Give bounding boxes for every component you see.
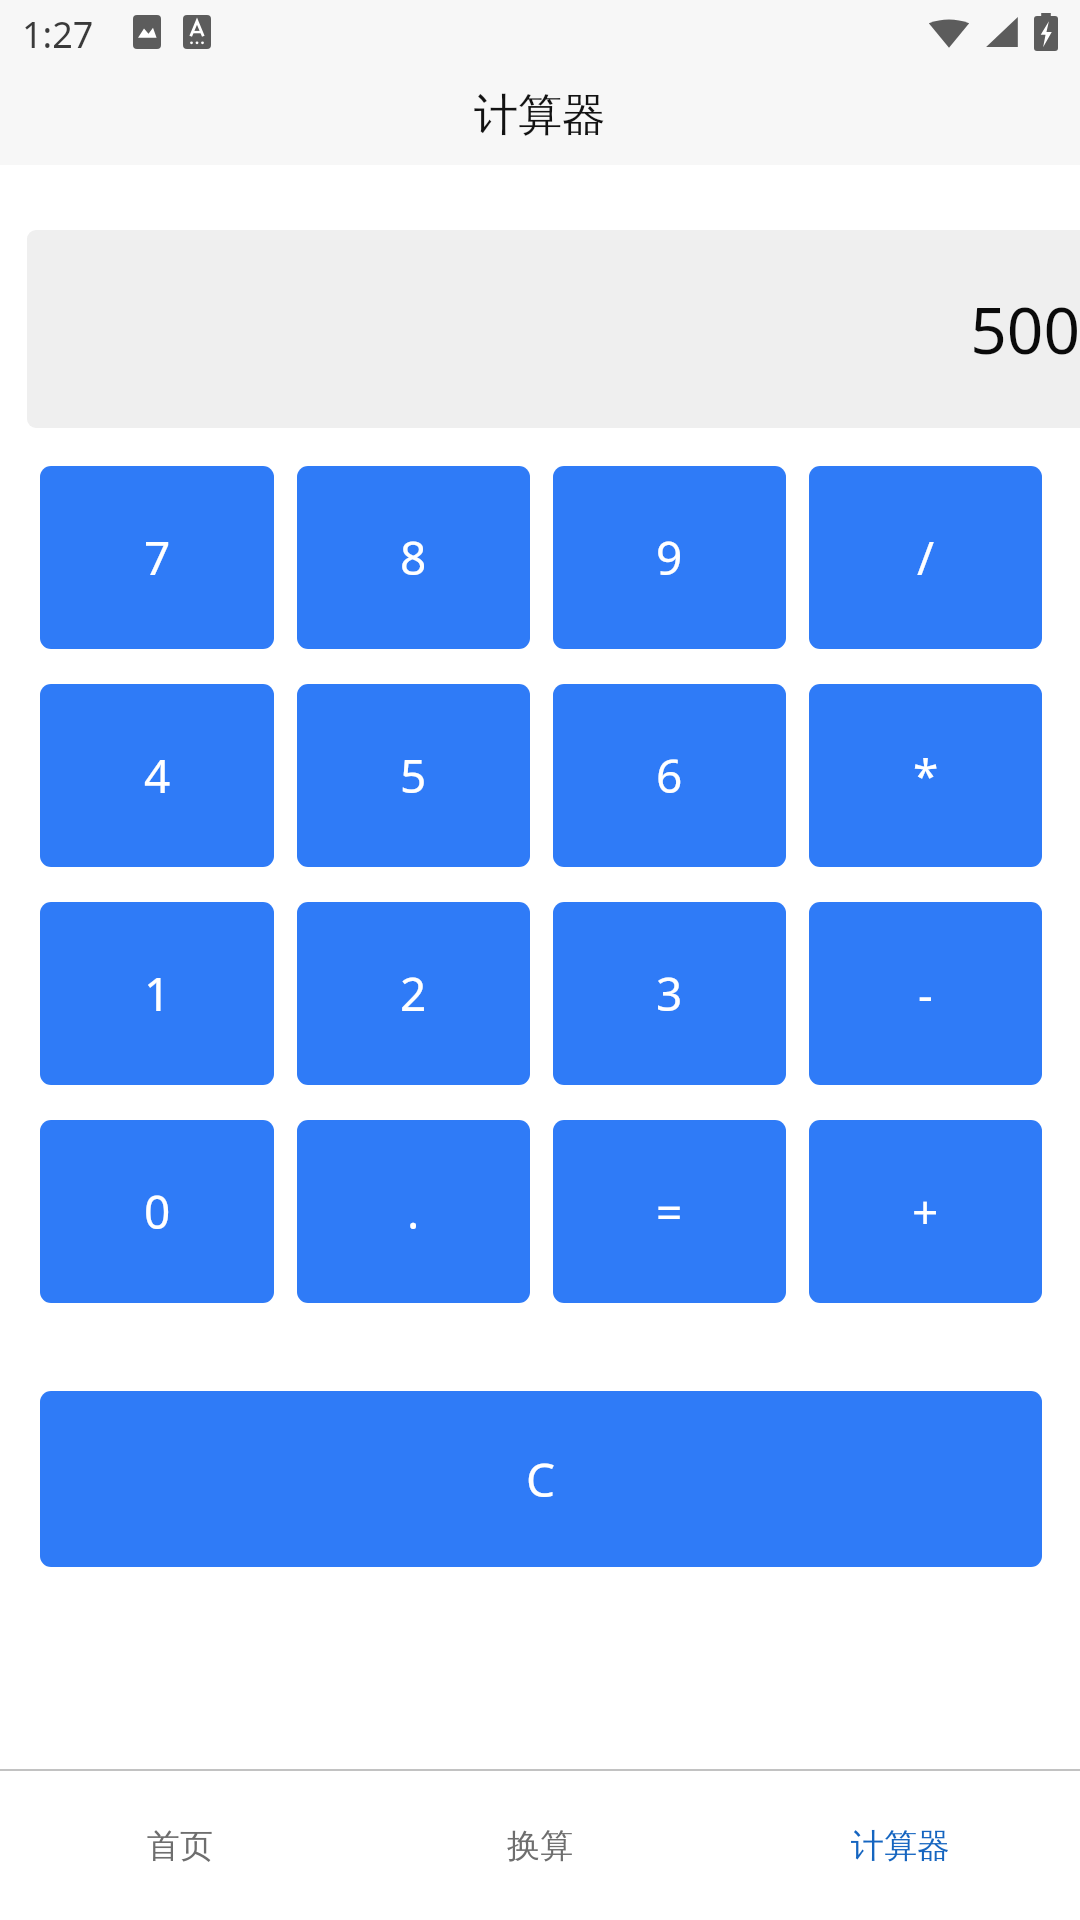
- button[interactable]: 4: [40, 684, 274, 867]
- button[interactable]: 首页: [0, 1771, 360, 1920]
- staticText: 1:27: [22, 10, 94, 59]
- staticText: 计算器: [474, 88, 606, 143]
- staticText: 9: [656, 526, 683, 589]
- staticText: 6: [656, 744, 683, 807]
- button[interactable]: -: [809, 902, 1042, 1085]
- button[interactable]: 换算: [360, 1771, 720, 1920]
- staticText: 7: [144, 526, 171, 589]
- staticText: 8: [400, 526, 427, 589]
- other: Wi-Fi: [928, 15, 970, 49]
- button[interactable]: 9: [553, 466, 786, 649]
- button[interactable]: 2: [297, 902, 530, 1085]
- button[interactable]: 5: [297, 684, 530, 867]
- button[interactable]: 计算器: [720, 1771, 1080, 1920]
- staticText: C: [526, 1448, 556, 1511]
- staticText: 5: [400, 744, 427, 807]
- button[interactable]: 0: [40, 1120, 274, 1303]
- other: Battery: [1034, 13, 1058, 51]
- button[interactable]: 8: [297, 466, 530, 649]
- staticText: =: [656, 1180, 683, 1243]
- button[interactable]: 6: [553, 684, 786, 867]
- staticText: 3: [656, 962, 683, 1025]
- staticText: -: [918, 962, 933, 1025]
- button[interactable]: 7: [40, 466, 274, 649]
- button[interactable]: 500: [27, 230, 1080, 428]
- button[interactable]: /: [809, 466, 1042, 649]
- button[interactable]: +: [809, 1120, 1042, 1303]
- staticText: 4: [144, 744, 171, 807]
- staticText: 500: [970, 286, 1080, 373]
- staticText: +: [912, 1180, 939, 1243]
- staticText: /: [917, 526, 935, 589]
- button[interactable]: .: [297, 1120, 530, 1303]
- button[interactable]: C: [40, 1391, 1042, 1567]
- staticText: .: [407, 1180, 420, 1243]
- button[interactable]: 3: [553, 902, 786, 1085]
- staticText: 1: [144, 962, 171, 1025]
- staticText: *: [913, 744, 939, 807]
- button[interactable]: =: [553, 1120, 786, 1303]
- other: Signal: [984, 15, 1020, 49]
- staticText: 首页: [147, 1825, 213, 1867]
- other: Screenshot: [132, 14, 162, 50]
- staticText: 计算器: [851, 1825, 950, 1867]
- staticText: 0: [144, 1180, 171, 1243]
- staticText: 换算: [507, 1825, 573, 1867]
- button[interactable]: 1: [40, 902, 274, 1085]
- staticText: 2: [400, 962, 427, 1025]
- other: Notification: [182, 14, 212, 50]
- button[interactable]: *: [809, 684, 1042, 867]
